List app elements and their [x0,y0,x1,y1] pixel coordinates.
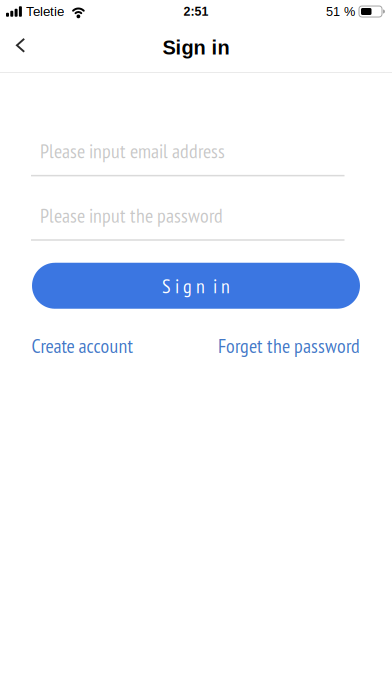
staticText: Teletie [26,4,64,19]
staticText: Sign in [162,36,229,59]
staticText: Forget the password [218,333,360,359]
staticText: Create account [31,333,133,359]
button[interactable]: Back [0,24,39,71]
button[interactable]: Forget the password [218,333,360,359]
staticText: 2:51 [183,5,208,18]
button[interactable]: Please input email address [31,138,344,176]
staticText: Please input the password [40,202,223,228]
button[interactable]: Please input the password [31,202,344,241]
button[interactable]: S i g n i n [32,263,360,309]
button[interactable]: Create account [31,333,133,359]
staticText: 51 % [326,4,355,19]
staticText: Please input email address [40,138,225,164]
staticText: S i g n i n [162,273,230,299]
